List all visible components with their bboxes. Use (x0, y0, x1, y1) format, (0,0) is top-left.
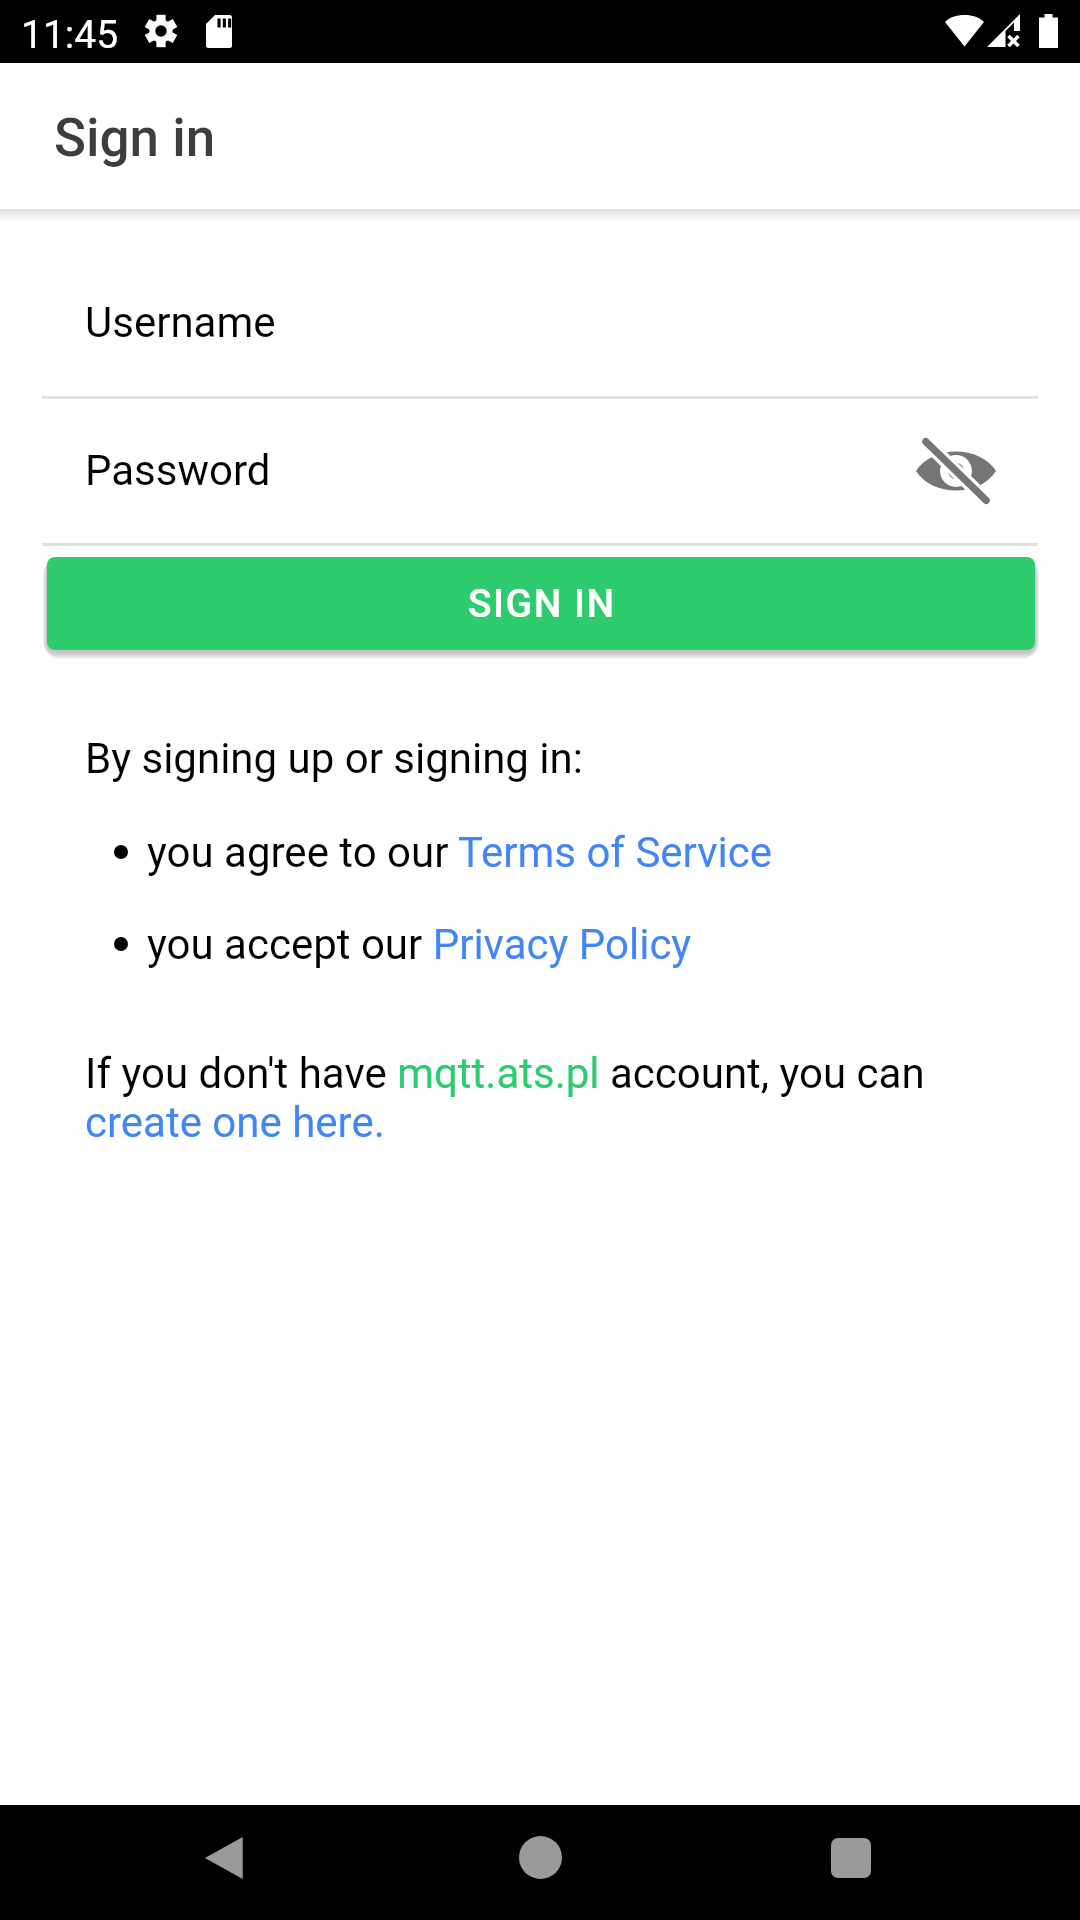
staticText: If you don't have mqtt.ats.pl account, y… (85, 1049, 1035, 1147)
staticText: you agree to our Terms of Service (147, 828, 773, 877)
staticText: Username (85, 298, 276, 347)
button[interactable]: Home (480, 1800, 600, 1915)
staticText: 11:45 (21, 12, 119, 58)
button[interactable]: Show password (902, 417, 1010, 525)
button[interactable]: Username (0, 250, 1080, 396)
button[interactable]: Back (166, 1800, 286, 1915)
staticText: Password (85, 446, 271, 495)
button[interactable]: Password (0, 399, 1080, 543)
staticText: By signing up or signing in: (85, 734, 583, 783)
button[interactable]: Recents (791, 1800, 911, 1915)
staticText: Sign in (54, 107, 216, 169)
button[interactable]: SIGN IN (47, 557, 1035, 650)
staticText: SIGN IN (468, 581, 616, 627)
staticText: you accept our Privacy Policy (147, 920, 692, 969)
